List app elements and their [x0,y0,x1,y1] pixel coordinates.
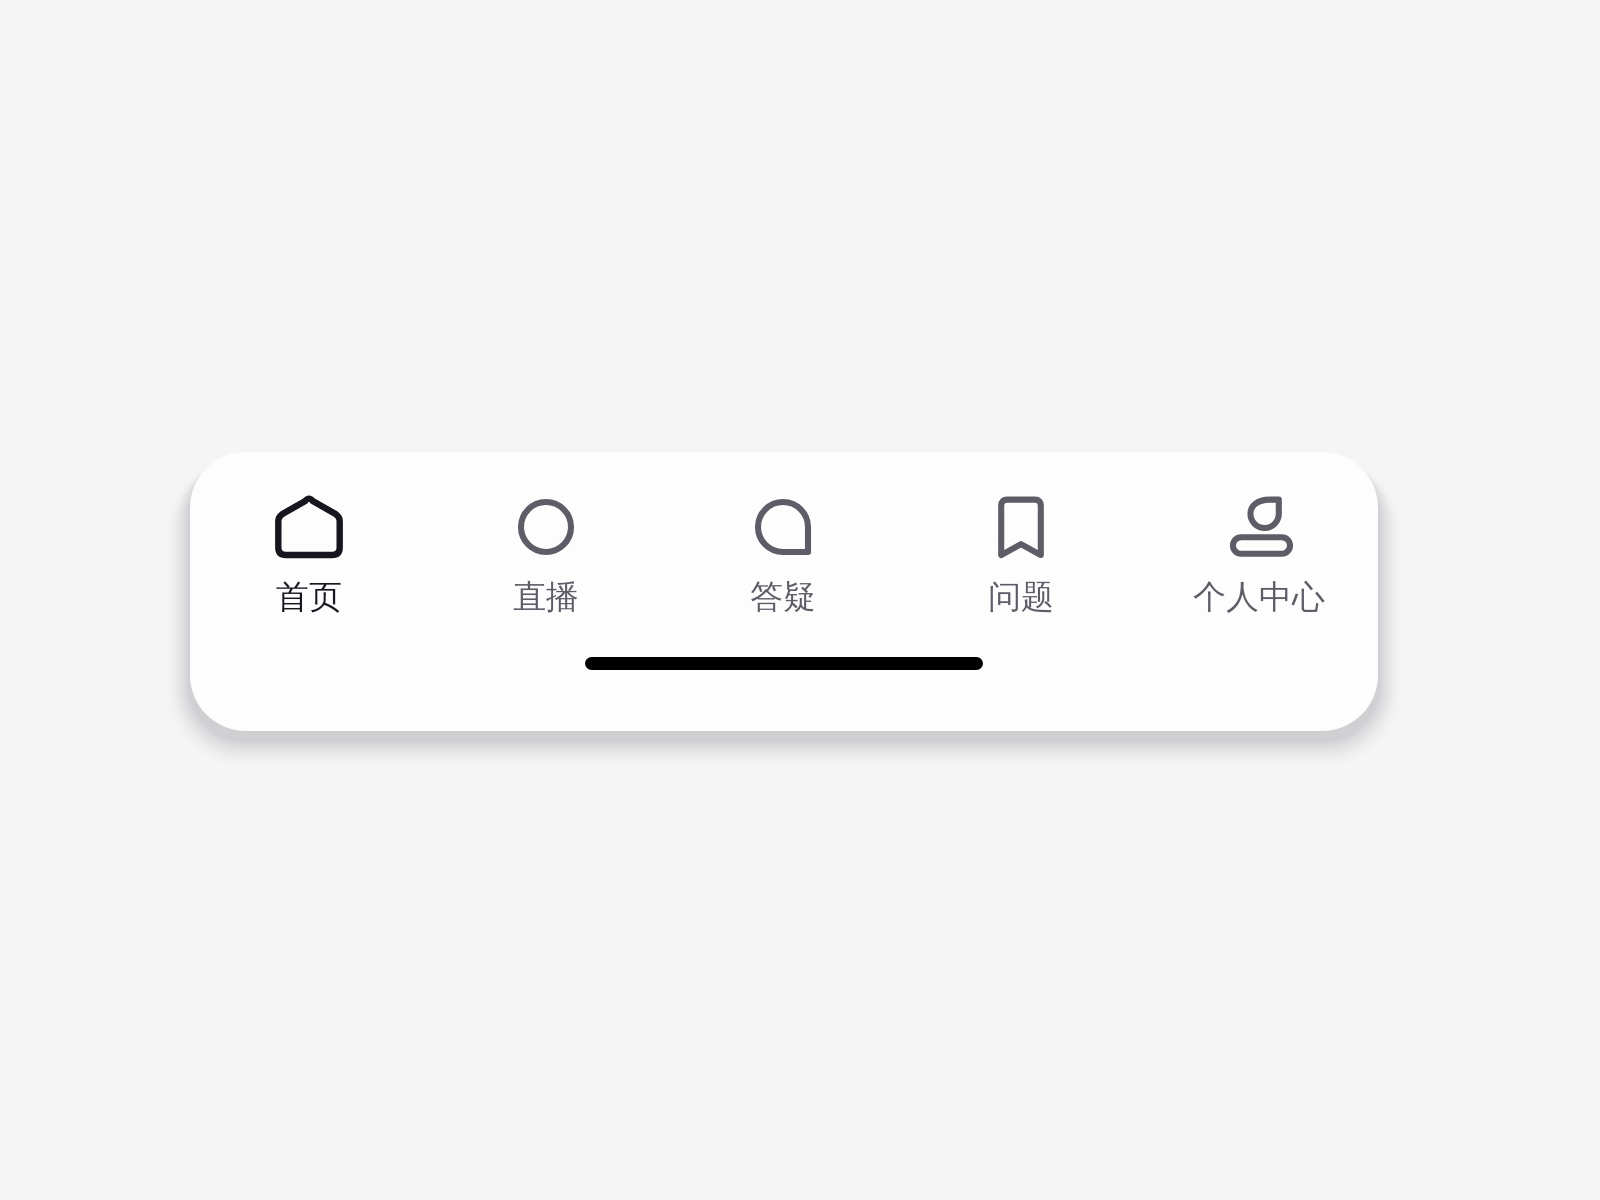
staticText: 答疑 [750,576,816,618]
button[interactable]: 直播 [427,452,664,638]
staticText: 个人中心 [1193,576,1325,618]
button[interactable]: 首页 [190,452,427,638]
staticText: 直播 [513,576,579,618]
button[interactable]: 个人中心 [1140,452,1378,638]
button[interactable]: 答疑 [664,452,902,638]
staticText: 首页 [276,576,342,618]
button[interactable]: 问题 [902,452,1140,638]
staticText: 问题 [988,576,1054,618]
